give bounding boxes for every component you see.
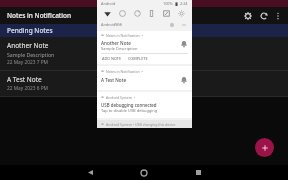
button[interactable]: Back: [76, 165, 104, 180]
button[interactable]: Auto-rotate: [131, 7, 144, 20]
staticText: A Test Note: [101, 77, 180, 83]
staticText: Sample Description: [101, 46, 138, 51]
staticText: A Test Note: [7, 75, 42, 84]
button[interactable]: COMPLETE: [127, 55, 149, 62]
staticText: Tap to disable USB debugging: [101, 108, 158, 113]
staticText: Android System • USB charging this devic…: [106, 122, 176, 127]
staticText: 22 May 2023 6 PM: [7, 85, 48, 92]
staticText: AndroidWifi: [101, 22, 123, 27]
staticText: Android: [101, 1, 116, 6]
button[interactable]: Flashlight: [145, 7, 158, 20]
button[interactable]: Expand: [180, 21, 188, 29]
button[interactable]: ADD NOTE: [101, 55, 123, 62]
staticText: Sample Description: [7, 51, 55, 58]
button[interactable]: Android System •: [97, 92, 192, 118]
button[interactable]: Notes in Notification •: [97, 31, 192, 64]
staticText: Notes in Notification: [7, 11, 72, 20]
button[interactable]: Bluetooth: [116, 7, 129, 20]
button[interactable]: Settings: [168, 21, 176, 29]
button[interactable]: Add note: [255, 138, 274, 157]
button[interactable]: Wi-Fi: [101, 7, 114, 20]
staticText: Another Note: [7, 41, 49, 50]
button[interactable]: Settings: [240, 8, 256, 24]
button[interactable]: Recents: [184, 165, 212, 180]
staticText: COMPLETE: [128, 56, 148, 61]
button[interactable]: Notes in Notification •: [97, 66, 192, 90]
staticText: Pending Notes: [7, 26, 53, 35]
staticText: Notes in Notification •: [106, 33, 143, 38]
button[interactable]: Screenshot: [160, 7, 173, 20]
button[interactable]: Pending Notes: [0, 24, 288, 37]
button[interactable]: Home: [130, 165, 158, 180]
staticText: Notes in Notification •: [106, 69, 143, 74]
button[interactable]: Refresh: [256, 8, 272, 24]
button[interactable]: More options: [272, 10, 284, 22]
staticText: 2:24: [180, 1, 188, 6]
button[interactable]: Android System • USB charging this devic…: [97, 120, 192, 128]
staticText: 22 May 2023 7 PM: [7, 59, 48, 66]
button[interactable]: Android: [97, 0, 192, 128]
button[interactable]: A Test Note: [0, 71, 288, 96]
staticText: Another Note: [101, 40, 131, 46]
staticText: USB debugging connected: [101, 102, 157, 108]
staticText: 100%: [163, 1, 173, 6]
button[interactable]: Brightness: [175, 7, 188, 20]
button[interactable]: Another Note: [0, 37, 288, 70]
staticText: ADD NOTE: [102, 56, 122, 61]
staticText: Android System •: [106, 95, 136, 100]
